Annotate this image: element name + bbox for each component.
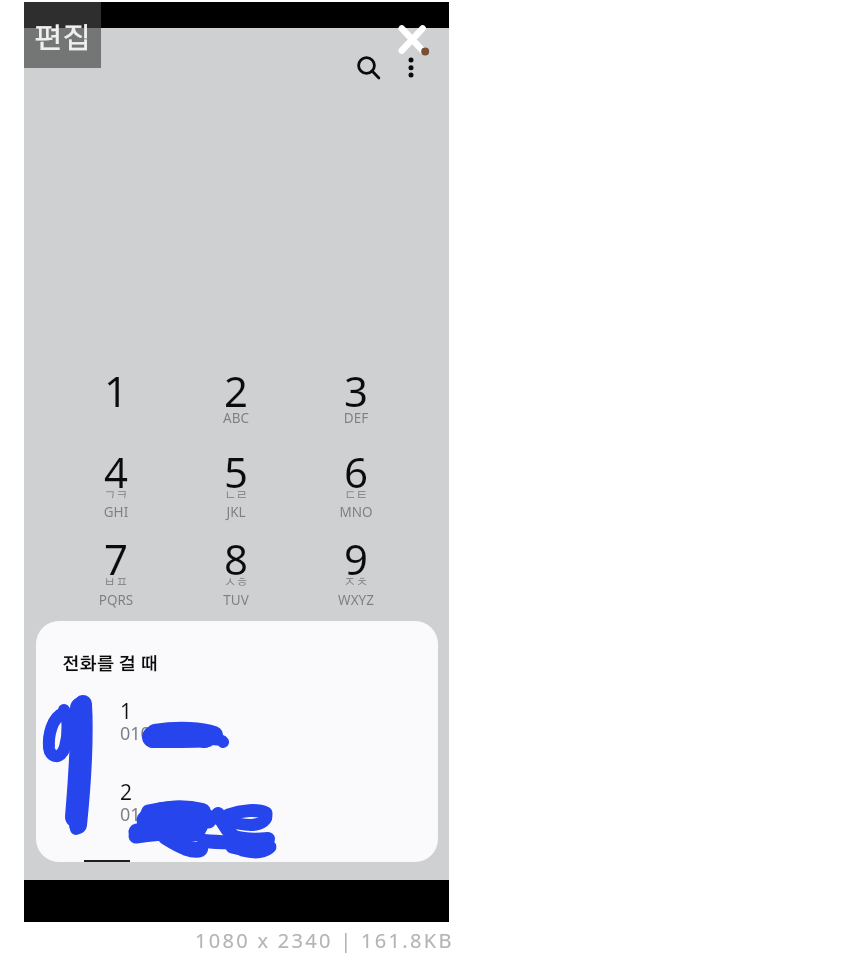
button[interactable]: Close xyxy=(394,21,430,57)
staticText: TUV xyxy=(176,591,296,609)
staticText: ㄴㄹ xyxy=(176,489,296,501)
staticText: 010 xyxy=(120,802,151,827)
staticText: ㄷㅌ xyxy=(296,489,416,501)
button[interactable]: 2 xyxy=(120,778,410,836)
staticText: 4 xyxy=(56,443,176,500)
staticText: ㅈㅊ xyxy=(296,576,416,588)
staticText: ㄱㅋ xyxy=(56,489,176,501)
button[interactable]: 7 xyxy=(56,522,176,609)
staticText: 전화를 걸 때 xyxy=(62,656,158,674)
button[interactable]: 5 xyxy=(176,435,296,522)
staticText: MNO xyxy=(296,503,416,521)
staticText: 010 xyxy=(120,721,151,746)
staticText: 9 xyxy=(296,530,416,587)
staticText: 2 xyxy=(120,778,133,807)
staticText: 5 xyxy=(176,443,296,500)
button[interactable]: 2 xyxy=(176,354,296,441)
staticText: 1 xyxy=(56,362,176,419)
button[interactable]: 6 xyxy=(296,435,416,522)
button[interactable]: 4 xyxy=(56,435,176,522)
staticText: 1 xyxy=(120,697,133,726)
staticText: 8 xyxy=(176,530,296,587)
staticText: 6 xyxy=(296,443,416,500)
staticText: ㅅㅎ xyxy=(176,576,296,588)
staticText: JKL xyxy=(176,503,296,521)
staticText: PQRS xyxy=(56,591,176,609)
staticText: 1080 x 2340 | 161.8KB xyxy=(195,927,454,954)
button[interactable]: 8 xyxy=(176,522,296,609)
button[interactable]: Search xyxy=(344,43,389,88)
staticText: 편집 xyxy=(34,25,91,54)
button[interactable]: 1 xyxy=(120,697,410,755)
staticText: 2 xyxy=(176,362,296,419)
staticText: DEF xyxy=(296,409,416,427)
staticText: 3 xyxy=(296,362,416,419)
staticText: WXYZ xyxy=(296,591,416,609)
button[interactable]: 9 xyxy=(296,522,416,609)
staticText: 7 xyxy=(56,530,176,587)
staticText: ABC xyxy=(176,409,296,427)
button[interactable]: More options xyxy=(389,43,434,88)
staticText: GHI xyxy=(56,503,176,521)
button[interactable]: 3 xyxy=(296,354,416,441)
staticText: ㅂㅍ xyxy=(56,576,176,588)
button[interactable]: 1 xyxy=(56,354,176,441)
button[interactable]: 편집 xyxy=(24,2,101,68)
